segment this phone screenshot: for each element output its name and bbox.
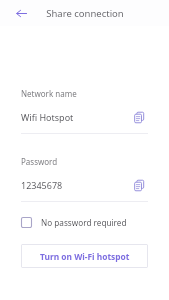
staticText: Password [21, 156, 58, 167]
staticText: Wifi Hotspot [21, 111, 74, 123]
staticText: 12345678 [21, 179, 63, 191]
button[interactable]: No password required [21, 214, 148, 231]
staticText: Share connection [46, 7, 124, 20]
button[interactable]: Back [8, 0, 34, 26]
staticText: No password required [41, 217, 127, 228]
button[interactable]: Copy password [130, 176, 148, 194]
button[interactable]: Turn on Wi-Fi hotspot [21, 244, 148, 268]
staticText: Network name [21, 88, 77, 99]
button[interactable]: Copy network name [130, 108, 148, 126]
staticText: Turn on Wi-Fi hotspot [40, 251, 130, 262]
